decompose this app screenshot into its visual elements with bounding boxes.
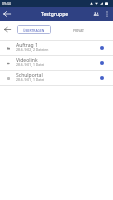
staticText: 28.6. 9:02, 2 Dateien	[16, 47, 49, 52]
staticText: 28.6. 9:01, 1 Datei	[16, 62, 45, 67]
button[interactable]: Add people	[89, 7, 102, 21]
staticText: 09:34	[2, 1, 11, 6]
button[interactable]: ÜBERTRAGEN	[17, 25, 51, 34]
button[interactable]: Videolink	[0, 56, 113, 70]
button[interactable]: PRIVAT	[61, 25, 95, 34]
staticText: Videolink	[16, 57, 38, 64]
staticText: ÜBERTRAGEN	[23, 28, 45, 32]
button[interactable]: Back	[0, 7, 14, 21]
button[interactable]: Schulportal	[0, 71, 113, 85]
staticText: Testgruppe	[41, 11, 69, 18]
button[interactable]: More options	[100, 7, 113, 21]
staticText: Auftrag 1	[16, 42, 38, 49]
staticText: 28.6. 9:01, 1 Datei	[16, 77, 45, 82]
button[interactable]: Auftrag 1	[0, 41, 113, 55]
staticText: Schulportal	[16, 72, 43, 79]
staticText: PRIVAT	[73, 28, 84, 32]
button[interactable]: Navigate up	[0, 22, 14, 36]
